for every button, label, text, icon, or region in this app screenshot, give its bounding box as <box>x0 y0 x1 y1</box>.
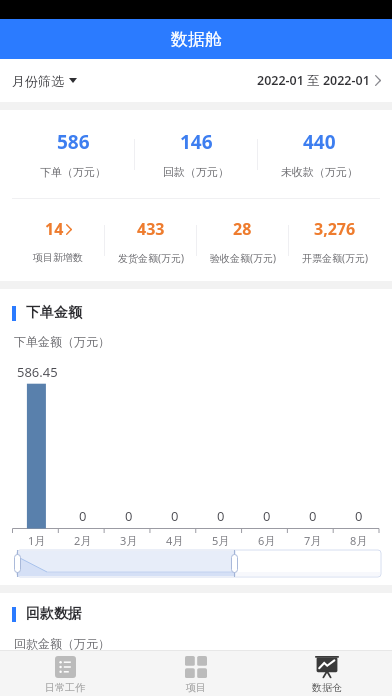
button[interactable]: 440 <box>258 110 380 198</box>
staticText: 回款数据 <box>26 605 82 623</box>
staticText: 下单（万元） <box>40 165 106 179</box>
staticText: 0 <box>217 507 225 525</box>
staticText: 下单金额（万元） <box>14 334 110 349</box>
staticText: 0 <box>125 507 133 525</box>
staticText: 3,276 <box>314 218 356 240</box>
staticText: 项目 <box>186 681 206 694</box>
staticText: 发货金额(万元) <box>118 251 184 265</box>
staticText: 1月 <box>28 533 46 548</box>
button[interactable]: 调整时间范围 <box>231 550 238 577</box>
staticText: 未收款（万元） <box>281 165 358 179</box>
staticText: 28 <box>233 218 252 240</box>
staticText: 日常工作 <box>45 681 85 694</box>
staticText: 2月 <box>74 533 92 548</box>
staticText: 0 <box>79 507 87 525</box>
staticText: 下单金额 <box>26 304 82 322</box>
staticText: 数据舱 <box>171 29 222 50</box>
staticText: 数据仓 <box>312 681 342 694</box>
button[interactable]: 2022-01 至 2022-01 <box>87 59 392 102</box>
staticText: 440 <box>303 129 336 155</box>
button[interactable]: 调整时间范围 <box>14 550 21 577</box>
staticText: 5月 <box>212 533 230 548</box>
button[interactable]: 14 <box>12 199 104 281</box>
staticText: 0 <box>263 507 271 525</box>
button[interactable]: 3,276 <box>289 199 380 281</box>
staticText: 0 <box>309 507 317 525</box>
button[interactable]: 日常工作 <box>0 651 130 696</box>
staticText: 回款金额（万元） <box>14 636 110 650</box>
button[interactable]: 月份筛选 <box>0 59 87 102</box>
staticText: 4月 <box>166 533 184 548</box>
staticText: 项目新增数 <box>33 251 83 264</box>
staticText: 14 <box>45 218 64 240</box>
button[interactable]: 146 <box>135 110 257 198</box>
staticText: 433 <box>137 218 165 240</box>
staticText: 586 <box>57 129 90 155</box>
staticText: 回款（万元） <box>163 165 229 179</box>
staticText: 月份筛选 <box>12 73 64 89</box>
staticText: 3月 <box>120 533 138 548</box>
staticText: 2022-01 至 2022-01 <box>257 72 370 89</box>
staticText: 146 <box>180 129 213 155</box>
staticText: 验收金额(万元) <box>210 251 276 265</box>
button[interactable]: 项目 <box>130 651 261 696</box>
staticText: 8月 <box>350 533 368 548</box>
staticText: 586.45 <box>17 363 58 381</box>
button[interactable]: 28 <box>197 199 288 281</box>
staticText: 开票金额(万元) <box>302 251 368 265</box>
button[interactable]: 数据仓 <box>261 651 392 696</box>
button[interactable]: 586 <box>12 110 134 198</box>
staticText: 6月 <box>258 533 276 548</box>
button[interactable]: 433 <box>105 199 196 281</box>
staticText: 0 <box>171 507 179 525</box>
staticText: 0 <box>355 507 363 525</box>
staticText: 7月 <box>304 533 322 548</box>
